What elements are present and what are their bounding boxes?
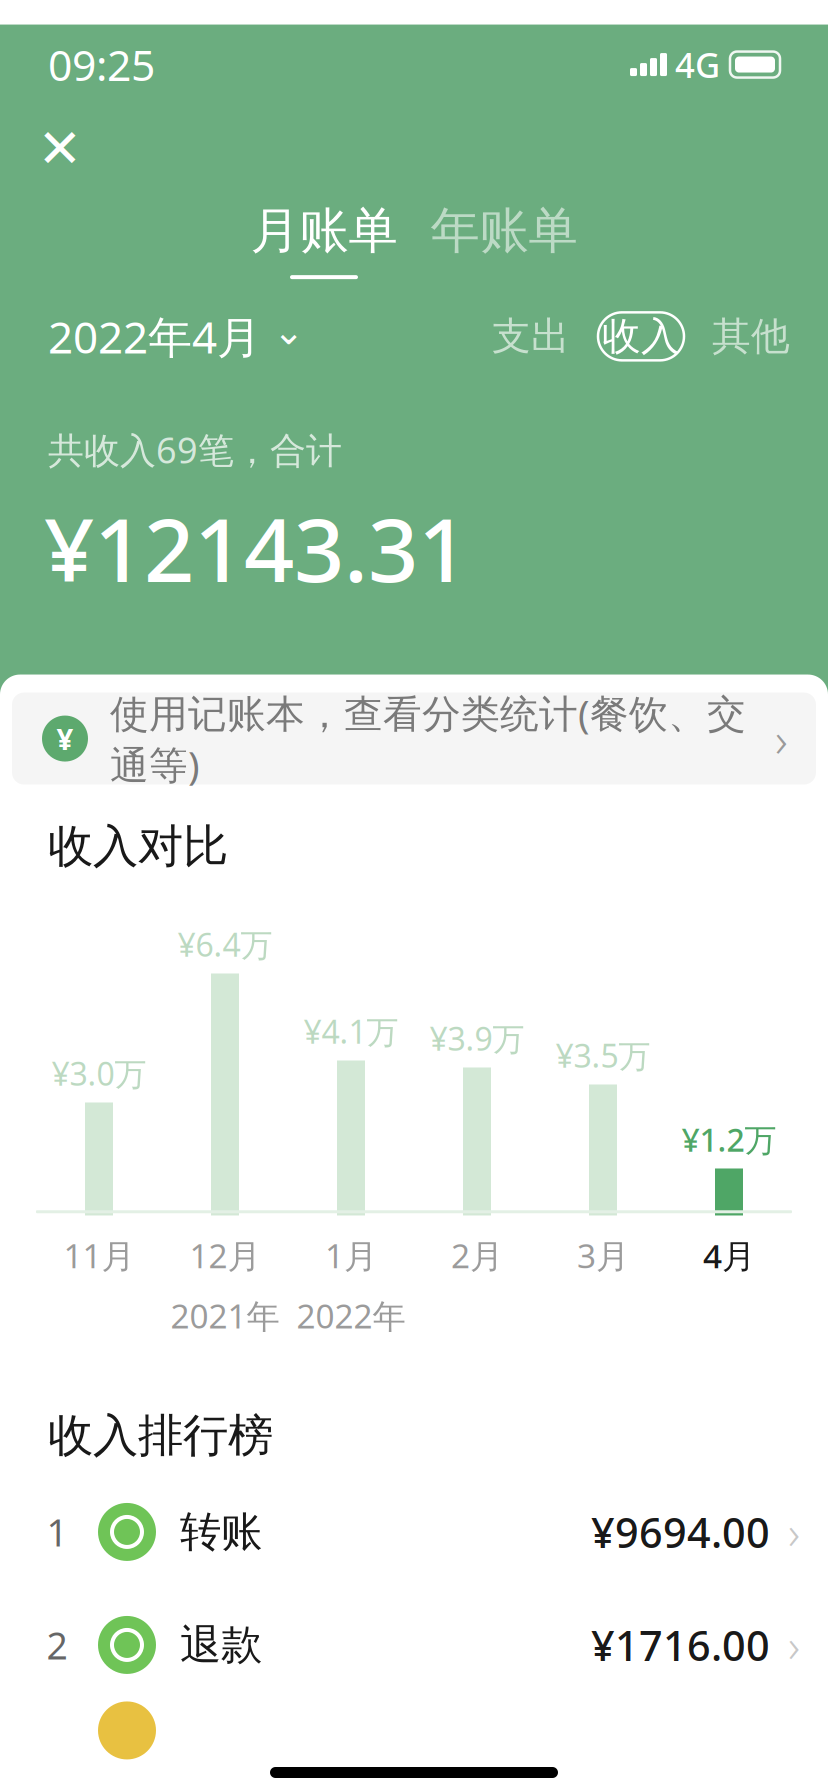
staticText: ¥12143.31: [44, 489, 468, 606]
button[interactable]: Close: [28, 117, 92, 181]
button[interactable]: ¥: [12, 693, 816, 785]
staticText: 退款: [180, 1620, 262, 1670]
button[interactable]: 其他: [704, 313, 798, 360]
staticText: 支出: [492, 313, 570, 360]
staticText: 1: [46, 1507, 67, 1557]
staticText: 月账单: [250, 201, 397, 261]
staticText: ✕: [37, 118, 82, 179]
button[interactable]: 2022年4月: [48, 307, 304, 365]
staticText: ¥9694.00: [591, 1504, 770, 1559]
staticText: 1月: [325, 1233, 377, 1277]
staticText: 2021年: [170, 1293, 279, 1338]
staticText: ¥1716.00: [591, 1617, 770, 1672]
button[interactable]: 收入: [578, 312, 704, 360]
button[interactable]: 月账单: [234, 201, 414, 279]
staticText: 其他: [712, 313, 790, 360]
staticText: ¥4.1万: [303, 1010, 398, 1052]
staticText: 年账单: [430, 201, 577, 261]
button[interactable]: 1: [0, 1475, 828, 1588]
staticText: 4G: [675, 41, 720, 87]
staticText: 2月: [451, 1233, 503, 1277]
staticText: 09:25: [48, 36, 155, 93]
button[interactable]: 支出: [484, 313, 578, 360]
staticText: ¥6.4万: [177, 923, 272, 965]
staticText: 收入排行榜: [48, 1408, 273, 1463]
staticText: 2022年: [296, 1293, 405, 1338]
staticText: 2: [46, 1620, 67, 1670]
staticText: ›: [788, 1502, 800, 1562]
staticText: 收入对比: [48, 819, 228, 874]
staticText: ›: [775, 707, 788, 770]
staticText: 转账: [180, 1507, 262, 1557]
staticText: 2022年4月: [48, 307, 261, 365]
staticText: 使用记账本，查看分类统计(餐饮、交通等): [110, 687, 746, 790]
staticText: ¥3.0万: [51, 1052, 146, 1094]
button[interactable]: 2: [0, 1588, 828, 1701]
staticText: ¥1.2万: [681, 1118, 776, 1160]
staticText: ¥3.9万: [429, 1017, 524, 1059]
staticText: 4月: [703, 1233, 755, 1277]
staticText: ›: [788, 1615, 800, 1675]
button[interactable]: 年账单: [414, 201, 594, 279]
staticText: ¥: [56, 719, 73, 758]
staticText: 11月: [63, 1233, 134, 1277]
staticText: 共收入69笔，合计: [48, 426, 342, 473]
staticText: ⌄: [273, 310, 304, 353]
staticText: 3月: [577, 1233, 629, 1277]
staticText: 12月: [189, 1233, 260, 1277]
staticText: ¥3.5万: [555, 1034, 650, 1076]
staticText: 收入: [602, 313, 680, 360]
